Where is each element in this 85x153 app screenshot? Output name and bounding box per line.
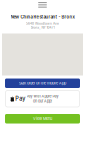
button[interactable]: Menu (34, 2, 50, 7)
staticText: New China Restaurant - Bronx (10, 14, 74, 20)
staticText: Start order on the mobile App (19, 81, 66, 85)
button[interactable]: Start order on the mobile App (5, 78, 80, 88)
staticText: Bronx, NY 10471 (30, 26, 54, 29)
button[interactable]: View Menu (5, 114, 80, 123)
staticText: Pay (15, 95, 25, 102)
staticText: Pay with Apple Pay (26, 94, 58, 98)
staticText: 5648 Woodlawn Ave (26, 22, 59, 25)
staticText: on our App! (33, 99, 52, 103)
staticText: View Menu (33, 116, 52, 121)
